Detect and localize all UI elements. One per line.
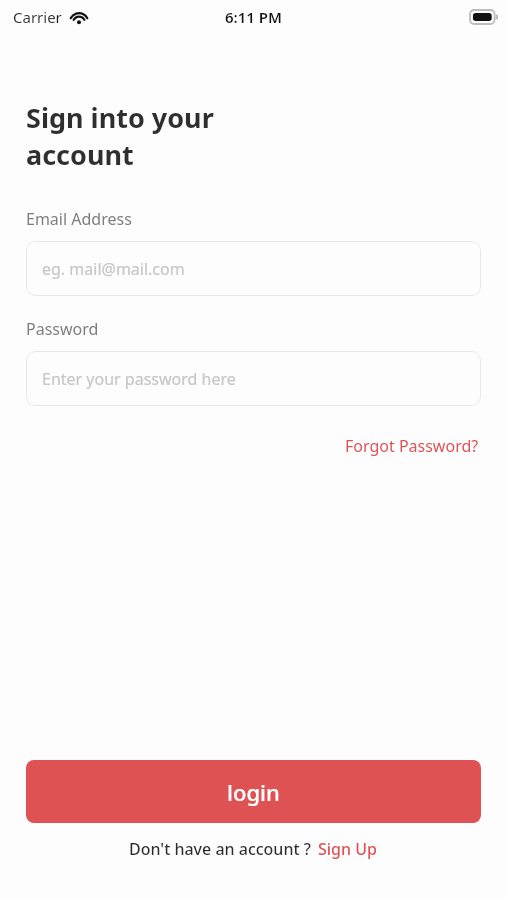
other: Battery full (470, 10, 498, 24)
staticText: Sign into your (26, 99, 214, 136)
staticText: 6:11 PM (225, 7, 282, 27)
staticText: login (227, 777, 280, 807)
button[interactable]: Sign Up (316, 836, 379, 862)
staticText: eg. mail@mail.com (42, 258, 185, 280)
staticText: Sign Up (318, 838, 377, 860)
staticText: Forgot Password? (345, 435, 479, 457)
staticText: Don't have an account ? (129, 838, 311, 860)
button[interactable]: login (26, 760, 481, 823)
staticText: Email Address (26, 208, 132, 230)
staticText: Carrier (13, 7, 62, 27)
button[interactable]: Email Address input (26, 241, 481, 296)
button[interactable]: Password input (26, 351, 481, 406)
staticText: Enter your password here (42, 368, 236, 390)
staticText: Password (26, 318, 99, 340)
staticText: account (26, 136, 134, 173)
other: Wi-Fi signal (69, 10, 89, 24)
button[interactable]: Forgot Password? (343, 432, 481, 460)
